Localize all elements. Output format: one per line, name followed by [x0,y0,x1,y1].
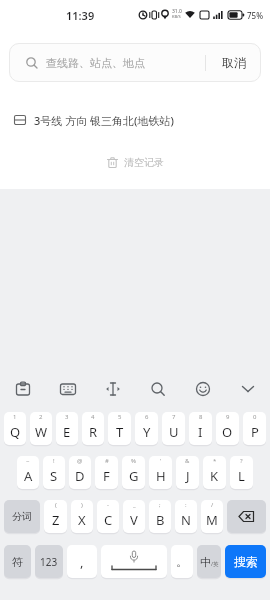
staticText: % [131,457,136,465]
staticText: 4 [91,413,95,421]
button[interactable] [45,377,90,401]
button[interactable] [135,377,180,401]
button[interactable]: % [122,456,145,489]
staticText: L [238,467,245,485]
button[interactable]: * [203,456,226,489]
staticText: J [186,467,190,485]
staticText: 6 [145,413,149,421]
button[interactable]: 中 [197,545,221,578]
staticText: - [107,501,109,509]
button[interactable]: 符 [4,545,31,578]
staticText: V [130,511,138,529]
staticText: A [24,467,33,485]
staticText: G [129,467,139,485]
button[interactable]: 3 [56,412,78,445]
staticText: & [185,457,190,465]
button[interactable]: 6 [135,412,158,445]
button[interactable]: ) [71,500,93,533]
staticText: 分词 [12,510,32,523]
button[interactable]: 分词 [4,500,40,533]
button[interactable]: 清空记录 [0,147,270,177]
button[interactable]: : [175,500,197,533]
button[interactable]: 取消 [206,43,261,82]
button[interactable]: ~ [17,456,39,489]
staticText: ! [53,457,55,465]
staticText: * [213,457,217,465]
staticText: # [105,457,109,465]
staticText: _ [133,501,136,509]
staticText: 9 [226,413,230,421]
staticText: O [222,423,233,441]
button[interactable]: 0 [243,412,266,445]
button[interactable] [101,545,167,578]
button[interactable]: 1 [4,412,26,445]
button[interactable]: & [176,456,199,489]
staticText: 符 [12,555,23,569]
staticText: 1 [13,413,17,421]
button[interactable]: 查线路、站点、地点 [9,43,205,82]
button[interactable]: 7 [162,412,185,445]
staticText: K [210,467,219,485]
staticText: ~ [26,457,30,465]
button[interactable]: @ [69,456,91,489]
button[interactable] [180,377,225,401]
staticText: , [80,553,84,571]
staticText: 8 [199,413,203,421]
staticText: E [63,423,71,441]
button[interactable]: 2 [30,412,52,445]
staticText: Q [10,423,21,441]
staticText: ; [159,501,161,509]
staticText: D [75,467,85,485]
button[interactable]: 3号线 方向 银三角北(地铁站) [0,103,270,137]
staticText: 7 [172,413,176,421]
staticText: R [89,423,98,441]
button[interactable]: # [95,456,118,489]
staticText: T [116,423,124,441]
button[interactable] [90,377,135,401]
button[interactable]: ' [149,456,172,489]
staticText: I [198,423,203,441]
staticText: 3号线 方向 银三角北(地铁站) [34,113,174,128]
staticText: X [78,511,86,529]
button[interactable] [227,500,266,533]
button[interactable]: 9 [216,412,239,445]
button[interactable]: ; [149,500,171,533]
staticText: 搜索 [234,554,258,569]
staticText: 31.0 [172,8,182,15]
button[interactable]: 5 [108,412,131,445]
button[interactable]: / [201,500,223,533]
button[interactable]: _ [123,500,145,533]
staticText: 3 [65,413,69,421]
staticText: ' [160,457,162,465]
button[interactable] [225,377,270,401]
button[interactable]: - [97,500,119,533]
button[interactable]: , [67,545,97,578]
staticText: 0 [253,413,257,421]
staticText: 。 [176,554,188,569]
staticText: 5 [118,413,122,421]
staticText: ( [55,501,57,509]
button[interactable]: ( [44,500,67,533]
button[interactable]: 。 [171,545,193,578]
staticText: 中 [200,555,211,569]
staticText: / [211,501,214,509]
button[interactable]: ! [43,456,65,489]
staticText: @ [77,457,83,465]
staticText: U [169,423,179,441]
button[interactable]: ? [230,456,253,489]
staticText: 查线路、站点、地点 [46,56,145,70]
staticText: 123 [40,555,58,569]
staticText: ) [81,501,83,509]
staticText: KB/S [172,14,181,19]
button[interactable]: 4 [82,412,104,445]
staticText: : [185,501,187,509]
button[interactable] [0,377,45,401]
staticText: H [156,467,166,485]
button[interactable]: 搜索 [225,545,266,578]
button[interactable]: 123 [35,545,63,578]
staticText: 75% [247,10,263,21]
staticText: Z [52,511,60,529]
button[interactable]: 8 [189,412,212,445]
staticText: 取消 [222,55,246,70]
staticText: 11:39 [66,8,95,23]
